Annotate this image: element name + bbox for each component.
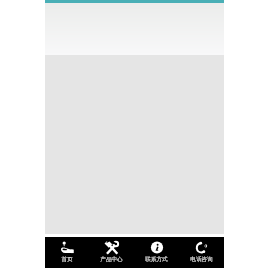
button[interactable]: 电话咨询 <box>179 237 224 268</box>
button[interactable]: 产品中心 <box>89 237 134 268</box>
staticText: 电话咨询 <box>190 256 213 263</box>
button[interactable]: 首页 <box>45 237 89 268</box>
staticText: 产品中心 <box>100 256 123 263</box>
staticText: 联系方式 <box>145 256 168 263</box>
button[interactable]: 联系方式 <box>134 237 179 268</box>
staticText: 首页 <box>61 256 73 263</box>
